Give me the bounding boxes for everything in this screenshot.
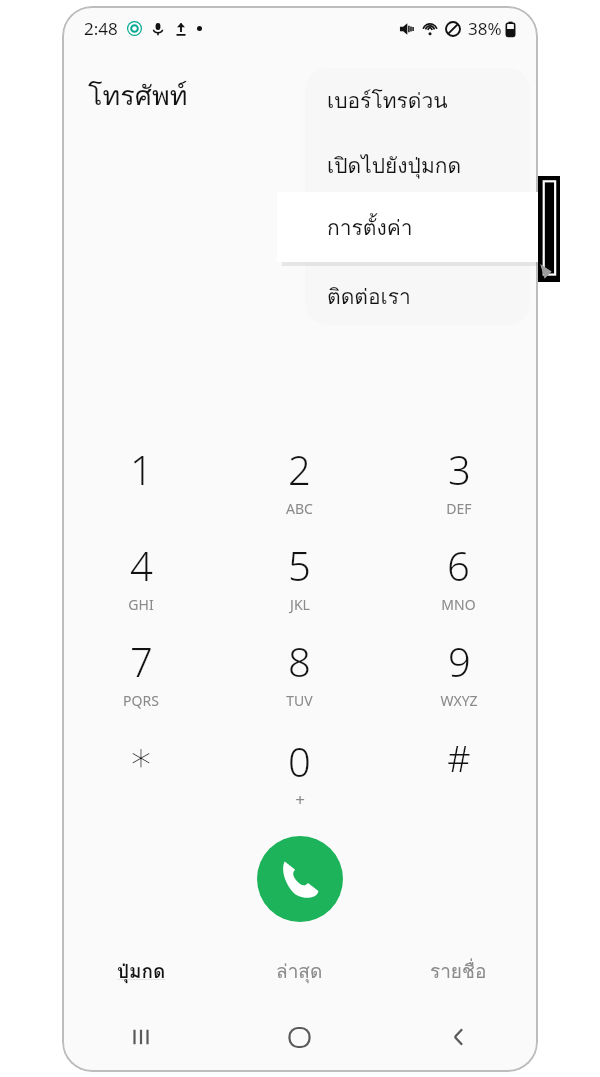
button[interactable]: 4 bbox=[62, 526, 220, 622]
staticText: ติดต่อเรา bbox=[327, 280, 411, 313]
staticText: MNO bbox=[441, 595, 476, 614]
staticText: การตั้งค่า bbox=[327, 211, 413, 244]
staticText: 8 bbox=[288, 634, 311, 688]
button[interactable]: Call bbox=[257, 836, 343, 922]
staticText: 7 bbox=[130, 634, 153, 688]
staticText: GHI bbox=[128, 595, 154, 614]
staticText: 4 bbox=[130, 538, 153, 592]
button[interactable]: 6 bbox=[379, 526, 538, 622]
staticText: JKL bbox=[290, 595, 310, 614]
staticText: WXYZ bbox=[440, 691, 478, 710]
staticText: 5 bbox=[288, 538, 311, 592]
button[interactable]: 0 bbox=[220, 718, 379, 814]
staticText: 1 bbox=[130, 442, 153, 496]
button[interactable]: เบอร์โทรด่วน bbox=[305, 68, 530, 132]
staticText: # bbox=[447, 734, 471, 783]
staticText: ∗ bbox=[128, 734, 154, 781]
button[interactable]: รายชื่อ bbox=[379, 956, 538, 1010]
staticText: TUV bbox=[286, 691, 313, 710]
staticText: 6 bbox=[447, 538, 470, 592]
staticText: ปุ่มกด bbox=[117, 956, 166, 986]
button[interactable]: Back bbox=[379, 1002, 538, 1072]
button[interactable]: ล่าสุด bbox=[220, 956, 379, 1010]
staticText: ล่าสุด bbox=[276, 956, 323, 986]
button[interactable]: # bbox=[379, 718, 538, 814]
button[interactable]: 5 bbox=[220, 526, 379, 622]
button[interactable]: Recents bbox=[62, 1002, 220, 1072]
staticText: 3 bbox=[448, 442, 471, 496]
staticText: 9 bbox=[448, 634, 471, 688]
staticText: PQRS bbox=[123, 691, 159, 710]
staticText: โทรศัพท์ bbox=[88, 74, 188, 117]
button[interactable]: 9 bbox=[379, 622, 538, 718]
staticText: เบอร์โทรด่วน bbox=[327, 84, 448, 117]
staticText: 0 bbox=[288, 734, 311, 788]
staticText: 2 bbox=[288, 442, 311, 496]
staticText: เปิดไปยังปุ่มกด bbox=[327, 149, 462, 182]
staticText: + bbox=[295, 788, 305, 811]
button[interactable]: 1 bbox=[62, 430, 220, 526]
staticText: ABC bbox=[286, 499, 313, 518]
button[interactable]: การตั้งค่า bbox=[277, 192, 539, 262]
button[interactable]: 2 bbox=[220, 430, 379, 526]
button[interactable]: ∗ bbox=[62, 718, 220, 814]
button[interactable]: ปุ่มกด bbox=[62, 956, 220, 1010]
staticText: 2:48 bbox=[84, 17, 118, 40]
button[interactable]: 3 bbox=[379, 430, 538, 526]
staticText: DEF bbox=[446, 499, 472, 518]
button[interactable]: ติดต่อเรา bbox=[305, 268, 530, 325]
button[interactable]: 7 bbox=[62, 622, 220, 718]
button[interactable]: Home bbox=[220, 1002, 379, 1072]
staticText: รายชื่อ bbox=[430, 956, 487, 986]
button[interactable]: 8 bbox=[220, 622, 379, 718]
staticText: 38% bbox=[468, 17, 502, 40]
button[interactable]: เปิดไปยังปุ่มกด bbox=[305, 132, 530, 198]
